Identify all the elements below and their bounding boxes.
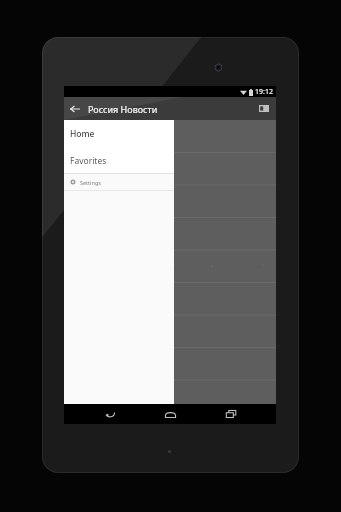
staticText: Россия Новости [88, 103, 158, 115]
button[interactable]: Change view [254, 97, 274, 120]
button[interactable]: Settings [64, 174, 174, 190]
button[interactable]: Home [64, 120, 174, 148]
button[interactable]: Back [95, 404, 125, 424]
staticText: Settings [80, 179, 101, 186]
button[interactable]: Favorites [64, 148, 174, 173]
staticText: Favorites [70, 155, 107, 167]
button[interactable]: Back [64, 97, 86, 120]
button[interactable]: Recent apps [216, 404, 246, 424]
button[interactable]: Home [155, 404, 185, 424]
staticText: Home [70, 128, 95, 140]
staticText: 19:12 [255, 87, 273, 97]
